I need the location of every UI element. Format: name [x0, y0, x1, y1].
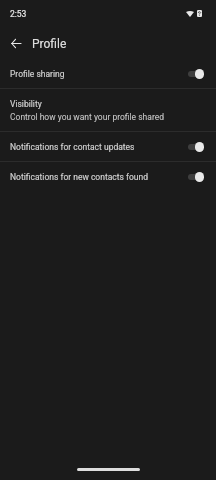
staticText: Visibility — [10, 99, 42, 109]
staticText: Notifications for contact updates — [10, 142, 187, 152]
button[interactable]: Back — [2, 30, 29, 57]
staticText: 2:53 — [10, 9, 27, 19]
button[interactable]: Profile sharing — [0, 59, 216, 88]
staticText: Control how you want your profile shared — [10, 112, 164, 122]
staticText: Notifications for new contacts found — [10, 172, 187, 182]
button[interactable]: Notifications for contact updates — [0, 132, 216, 161]
staticText: Profile — [32, 37, 67, 51]
staticText: Profile sharing — [10, 69, 187, 79]
button[interactable]: Notifications for new contacts found — [0, 162, 216, 191]
button[interactable]: Visibility — [0, 89, 216, 131]
